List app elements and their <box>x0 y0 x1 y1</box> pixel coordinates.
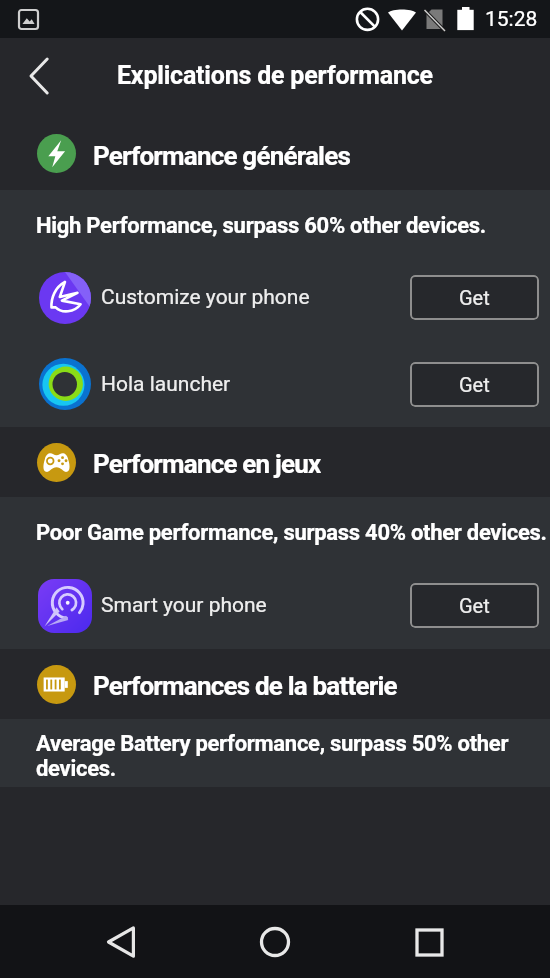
button[interactable]: Back <box>12 48 68 104</box>
staticText: 15:28 <box>485 7 538 32</box>
button[interactable]: Hola launcher <box>0 341 550 427</box>
button[interactable]: Performance générales <box>0 117 550 190</box>
button[interactable]: Performance en jeux <box>0 427 550 497</box>
staticText: Get <box>459 373 490 396</box>
button[interactable]: Smart your phone <box>0 562 550 649</box>
staticText: Performances de la batterie <box>93 671 397 701</box>
staticText: Performance en jeux <box>93 449 321 479</box>
button[interactable]: Home <box>243 910 307 974</box>
other: Screenshot <box>19 10 38 29</box>
button[interactable]: Recents <box>397 910 461 974</box>
staticText: Explications de performance <box>117 61 433 90</box>
button[interactable]: Get <box>410 583 539 628</box>
staticText: Customize your phone <box>101 285 310 310</box>
staticText: Performance générales <box>93 141 350 171</box>
staticText: Hola launcher <box>101 372 231 397</box>
staticText: Get <box>459 594 490 617</box>
button[interactable]: Back <box>90 910 154 974</box>
staticText: Poor Game performance, surpass 40% other… <box>36 520 547 546</box>
button[interactable]: Customize your phone <box>0 254 550 341</box>
staticText: Smart your phone <box>101 593 267 618</box>
staticText: Average Battery performance, surpass 50%… <box>36 731 548 782</box>
button[interactable]: Get <box>410 362 539 407</box>
staticText: High Performance, surpass 60% other devi… <box>36 213 486 239</box>
staticText: Get <box>459 286 490 309</box>
button[interactable]: Get <box>410 275 539 320</box>
button[interactable]: Performances de la batterie <box>0 649 550 719</box>
